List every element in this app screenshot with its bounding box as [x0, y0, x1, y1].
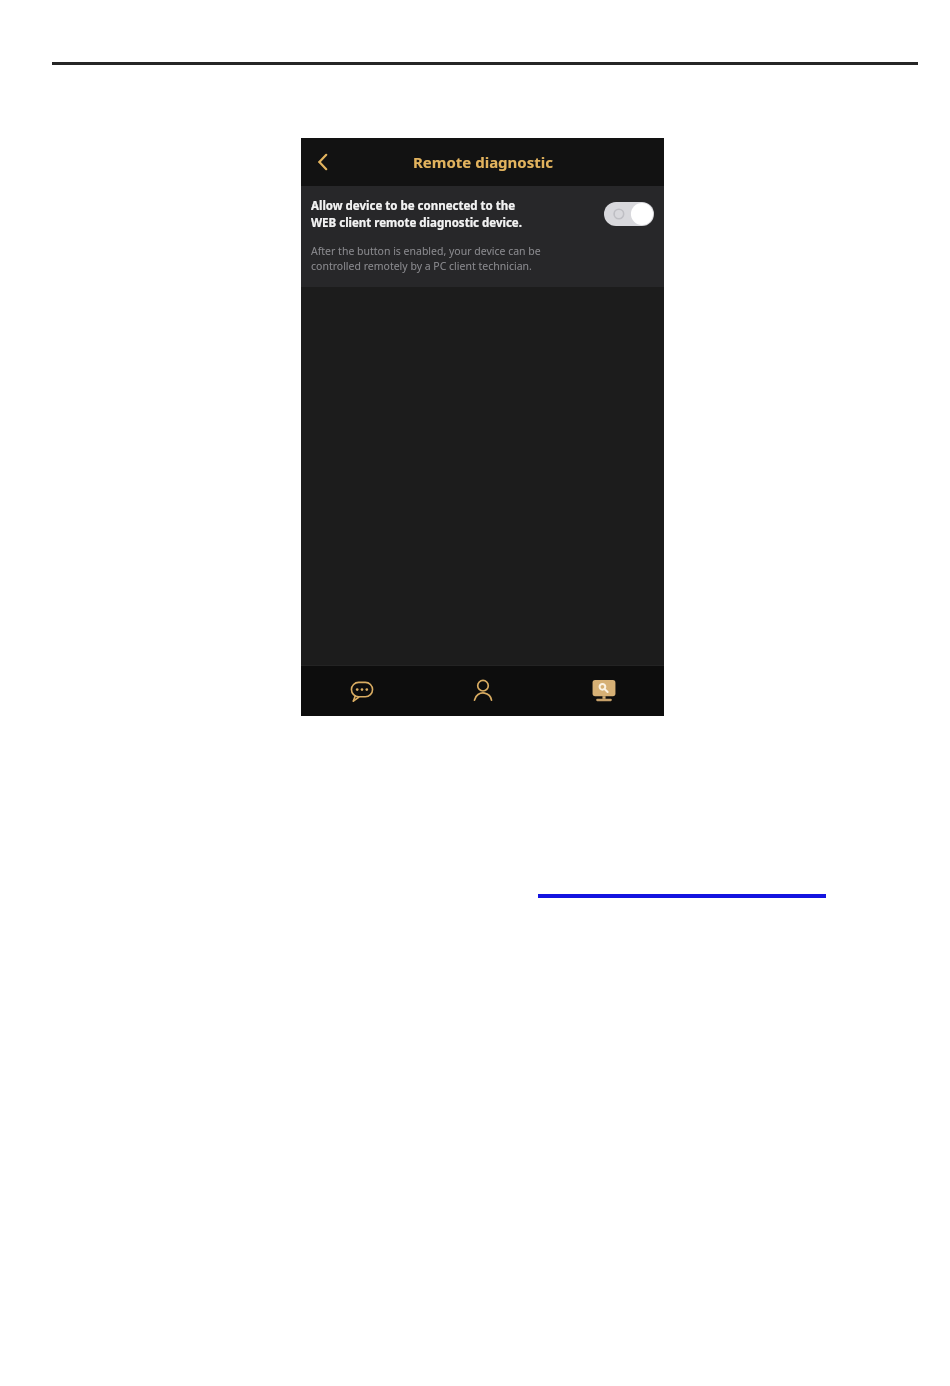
button[interactable]: Toggle remote diagnostic — [604, 202, 654, 226]
staticText: Allow device to be connected to the WEB … — [311, 198, 596, 230]
button[interactable]: Back — [301, 140, 345, 184]
button[interactable]: Messages — [301, 666, 422, 716]
button[interactable]: Remote diagnostic — [543, 666, 664, 716]
staticText: Remote diagnostic — [413, 152, 553, 172]
button[interactable]: Profile — [422, 666, 543, 716]
staticText: After the button is enabled, your device… — [311, 244, 541, 273]
